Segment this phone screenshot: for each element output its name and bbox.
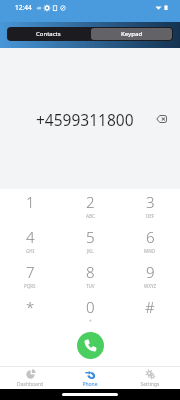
button[interactable]: # (120, 294, 180, 329)
button[interactable]: * (0, 294, 60, 329)
staticText: Settings (140, 381, 160, 388)
staticText: 8 (86, 262, 95, 282)
staticText: 2 (86, 192, 95, 212)
button[interactable]: Settings (120, 367, 180, 389)
button[interactable]: 6 (120, 224, 180, 259)
staticText: + (89, 318, 92, 324)
button[interactable]: Phone (60, 367, 120, 389)
staticText: * (26, 297, 35, 317)
button[interactable]: 2 (60, 189, 120, 224)
staticText: 5 (86, 227, 95, 247)
button[interactable]: 8 (60, 259, 120, 294)
staticText: 9 (146, 262, 155, 282)
button[interactable]: Dashboard (0, 367, 60, 389)
staticText: Keypad (121, 30, 143, 38)
staticText: ABC (86, 213, 95, 219)
staticText: Dashboard (17, 381, 43, 388)
staticText: # (145, 297, 155, 317)
staticText: 0 (86, 297, 95, 317)
staticText: 1 (26, 192, 35, 212)
button[interactable]: Contacts (7, 27, 90, 41)
staticText: GHI (26, 248, 35, 254)
button[interactable]: 1 (0, 189, 60, 224)
button[interactable]: Keypad (91, 28, 172, 40)
staticText: WXYZ (144, 283, 157, 289)
staticText: 7 (26, 262, 35, 282)
staticText: 4 (26, 227, 35, 247)
button[interactable]: 3 (120, 189, 180, 224)
staticText: Phone (82, 381, 98, 388)
staticText: Contacts (36, 30, 61, 38)
button[interactable]: 7 (0, 259, 60, 294)
button[interactable]: 0 (60, 294, 120, 329)
button[interactable]: Call (77, 332, 104, 359)
staticText: MNO (144, 248, 156, 254)
button[interactable]: 9 (120, 259, 180, 294)
staticText: JKL (87, 248, 94, 254)
staticText: DEF (146, 213, 155, 219)
staticText: 6 (146, 227, 155, 247)
button[interactable]: Backspace (150, 108, 172, 130)
staticText: 12:44 (15, 3, 32, 12)
staticText: +4599311800 (36, 109, 134, 130)
staticText: 3 (146, 192, 155, 212)
staticText: PQRS (24, 283, 36, 289)
button[interactable]: 5 (60, 224, 120, 259)
button[interactable]: 4 (0, 224, 60, 259)
staticText: TUV (86, 283, 95, 289)
